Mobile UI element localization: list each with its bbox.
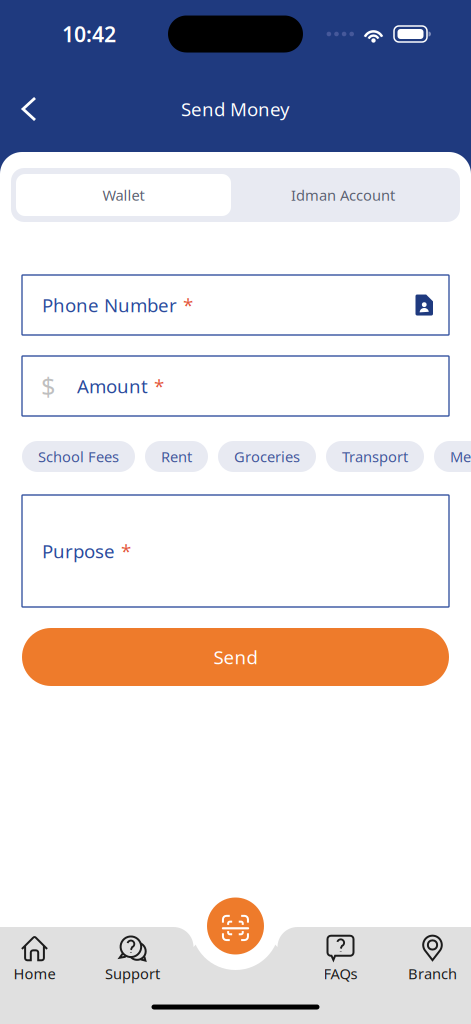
staticText: 10:42 [62,20,116,48]
button[interactable]: Rent [145,441,208,472]
staticText: Amount [77,374,148,398]
staticText: Wallet [102,185,144,205]
button[interactable]: School Fees [22,441,135,472]
staticText: Rent [161,447,192,466]
button[interactable]: Send [22,628,449,686]
button[interactable]: Medical [434,441,471,472]
staticText: Send Money [181,97,290,121]
staticText: Medical [450,447,471,466]
staticText: FAQs [323,964,357,983]
staticText: Transport [342,447,408,466]
button[interactable]: Branch [394,927,471,990]
button[interactable]: Scan QR code [191,882,279,970]
staticText: Support [105,964,160,983]
button[interactable]: Home [0,927,69,990]
staticText: * [121,539,131,563]
staticText: School Fees [38,447,119,466]
button[interactable]: Back [0,73,60,133]
staticText: Send [213,645,257,669]
button[interactable]: Purpose [22,495,449,607]
button[interactable]: Phone Number [22,275,449,335]
staticText: Purpose [42,539,115,563]
button[interactable]: Groceries [218,441,316,472]
staticText: Phone Number [42,293,177,317]
staticText: Idman Account [291,185,395,205]
staticText: * [154,374,164,398]
staticText: $ [41,369,55,403]
button[interactable]: Support [69,927,196,990]
staticText: Home [13,964,55,983]
button[interactable]: Transport [326,441,424,472]
button[interactable]: Wallet [16,174,231,216]
button[interactable]: Idman Account [231,174,455,216]
staticText: * [183,293,193,317]
button[interactable]: FAQs [287,927,394,990]
staticText: Groceries [234,447,300,466]
button[interactable]: $ [22,356,449,416]
staticText: Branch [408,964,457,983]
